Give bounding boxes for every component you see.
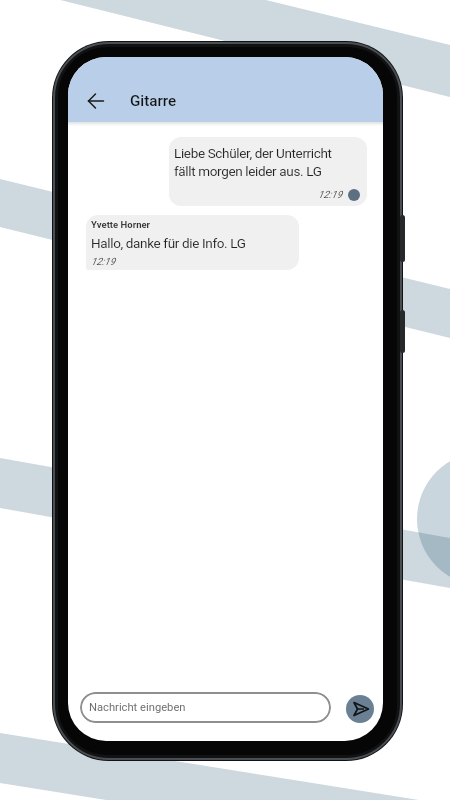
staticText: Gitarre	[130, 92, 177, 110]
staticText: 12:19	[318, 189, 343, 201]
button[interactable]: Nachricht eingeben	[80, 692, 331, 723]
staticText: Nachricht eingeben	[89, 701, 186, 714]
staticText: 12:19	[91, 256, 116, 268]
button[interactable]: Yvette Horner	[86, 215, 299, 270]
button[interactable]	[78, 83, 114, 119]
staticText: Yvette Horner	[91, 219, 151, 230]
staticText: fällt morgen leider aus. LG	[174, 163, 322, 179]
button[interactable]: Liebe Schüler, der Unterricht	[169, 137, 367, 206]
staticText: Hallo, danke für die Info. LG	[91, 235, 246, 251]
staticText: Liebe Schüler, der Unterricht	[174, 145, 332, 161]
button[interactable]	[346, 695, 374, 723]
